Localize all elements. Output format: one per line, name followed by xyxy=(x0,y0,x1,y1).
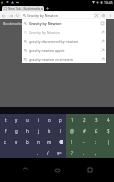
button[interactable]: , xyxy=(90,147,102,158)
button[interactable]: . xyxy=(78,147,90,158)
button[interactable]: 4 xyxy=(102,114,114,125)
staticText: u xyxy=(26,117,29,123)
staticText: j xyxy=(38,128,40,134)
button[interactable]: # xyxy=(78,125,90,136)
button[interactable]: gravity newton vs einstein xyxy=(22,55,106,63)
staticText: | xyxy=(107,139,110,145)
button[interactable]: gravity discovered by newton xyxy=(22,37,106,46)
staticText: . xyxy=(37,150,39,156)
button[interactable]: t xyxy=(0,114,11,125)
button[interactable]: 2 xyxy=(78,114,90,125)
staticText: New Tab - Bookmarks xyxy=(8,7,41,11)
staticText: h xyxy=(26,128,29,134)
button[interactable]: j xyxy=(33,125,44,136)
button[interactable]: : xyxy=(90,136,102,147)
button[interactable]: Recents xyxy=(82,162,98,178)
staticText: @ xyxy=(70,128,74,134)
button[interactable]: f xyxy=(0,125,11,136)
staticText: o xyxy=(48,117,51,123)
staticText: / xyxy=(47,150,49,156)
button[interactable]: c xyxy=(0,136,11,147)
button[interactable]: k xyxy=(44,125,55,136)
button[interactable]: g xyxy=(11,125,22,136)
button[interactable]: p xyxy=(55,114,66,125)
button[interactable]: v xyxy=(11,136,22,147)
staticText: £ xyxy=(95,128,98,134)
button[interactable]: b xyxy=(22,136,33,147)
button[interactable]: New Tab - Bookmarks xyxy=(2,6,44,11)
staticText: f xyxy=(5,128,7,134)
staticText: b xyxy=(26,139,29,145)
button[interactable]: l xyxy=(55,125,66,136)
staticText: - xyxy=(83,139,85,145)
button[interactable]: Gravity by Newton xyxy=(22,19,106,28)
button[interactable]: Gravity by Newton xyxy=(21,12,93,18)
button[interactable]: Clear xyxy=(93,12,100,19)
staticText: ! xyxy=(71,139,73,145)
button[interactable]: 1 xyxy=(66,114,78,125)
staticText: i xyxy=(38,117,40,123)
staticText: Gravity by Newton xyxy=(27,13,58,18)
button[interactable]: u xyxy=(22,114,33,125)
button[interactable]: gravity newton apple xyxy=(22,46,106,55)
button[interactable]: ! xyxy=(66,136,78,147)
button[interactable]: Back xyxy=(0,12,7,19)
button[interactable]: Back xyxy=(17,162,33,178)
staticText: 9 xyxy=(52,114,54,117)
button[interactable]: 3 xyxy=(90,114,102,125)
button[interactable]: . xyxy=(33,147,43,158)
button[interactable]: y xyxy=(11,114,22,125)
button[interactable]: / xyxy=(43,147,53,158)
staticText: v xyxy=(15,139,18,145)
button[interactable]: | xyxy=(102,136,114,147)
staticText: 10:45 xyxy=(104,0,113,5)
staticText: 1 xyxy=(71,117,74,123)
staticText: 7 xyxy=(30,114,32,117)
button[interactable]: Menu xyxy=(107,12,114,19)
button[interactable] xyxy=(55,136,66,147)
staticText: Bookmarks › xyxy=(3,21,26,26)
staticText: gravity newton vs einstein xyxy=(29,57,101,62)
button[interactable]: Reload xyxy=(14,12,21,19)
staticText: 8 xyxy=(41,114,43,117)
staticText: Gravity by Newton xyxy=(29,21,101,26)
staticText: l xyxy=(60,128,62,134)
staticText: p xyxy=(59,117,62,123)
button[interactable]: i xyxy=(33,114,44,125)
button[interactable]: go xyxy=(53,147,66,158)
button[interactable]: Bookmark xyxy=(100,12,107,19)
staticText: g xyxy=(15,128,18,134)
staticText: 4 xyxy=(107,117,110,123)
button[interactable]: ? xyxy=(66,147,78,158)
button[interactable]: @ xyxy=(66,125,78,136)
staticText: 0 xyxy=(63,114,65,117)
staticText: n xyxy=(37,139,40,145)
staticText: k xyxy=(48,128,51,134)
staticText: 5 xyxy=(8,114,10,117)
staticText: 2 xyxy=(83,117,86,123)
button[interactable]: Gravity by Newton xyxy=(22,28,106,37)
button[interactable]: Home xyxy=(49,162,65,178)
staticText: m xyxy=(47,139,52,145)
button[interactable]: $ xyxy=(102,125,114,136)
staticText: : xyxy=(95,139,97,145)
button[interactable]: New tab xyxy=(45,6,50,11)
staticText: , xyxy=(95,150,97,156)
button[interactable]: n xyxy=(33,136,44,147)
staticText: y xyxy=(15,117,18,123)
button[interactable]: o xyxy=(44,114,55,125)
button[interactable]: Forward xyxy=(7,12,14,19)
staticText: go xyxy=(57,150,62,155)
button[interactable]: £ xyxy=(90,125,102,136)
staticText: Gravity by Newton xyxy=(29,30,101,35)
button[interactable]: h xyxy=(22,125,33,136)
button[interactable]: m xyxy=(44,136,55,147)
staticText: t xyxy=(5,117,7,123)
staticText: $ xyxy=(107,128,110,134)
button[interactable]: - xyxy=(78,136,90,147)
staticText: 3 xyxy=(95,117,98,123)
staticText: gravity discovered by newton xyxy=(29,39,101,44)
staticText: . xyxy=(83,150,85,156)
